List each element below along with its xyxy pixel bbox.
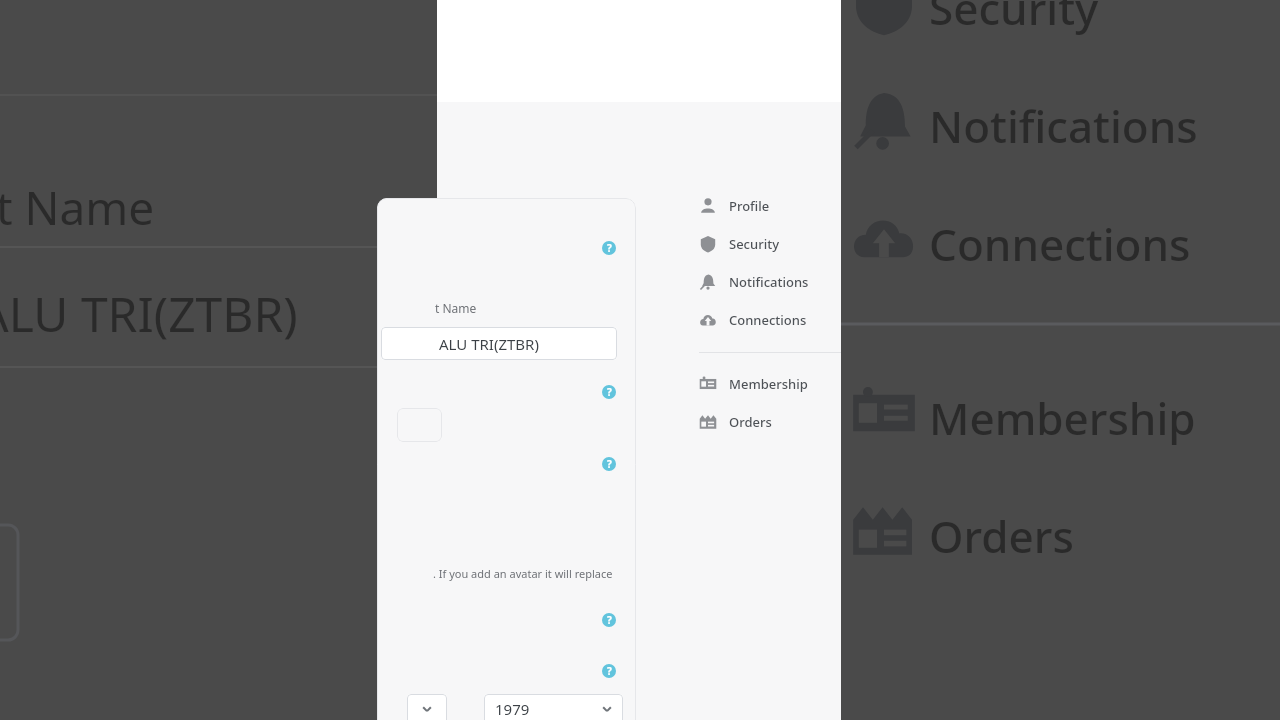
staticText: Orders: [929, 506, 1074, 566]
button[interactable]: Security: [699, 234, 841, 253]
staticText: t Name: [435, 300, 477, 316]
staticText: Security: [729, 235, 779, 253]
button[interactable]: Orders: [699, 412, 841, 431]
button[interactable]: Help: [602, 613, 616, 627]
button[interactable]: Help: [602, 385, 616, 399]
button[interactable]: Profile: [699, 196, 841, 215]
button[interactable]: Help: [602, 241, 616, 255]
button[interactable]: Connections: [699, 310, 841, 329]
button[interactable]: Help: [602, 457, 616, 471]
staticText: Membership: [729, 375, 808, 393]
staticText: Connections: [729, 311, 807, 329]
button[interactable]: ALU TRI(ZTBR): [381, 327, 617, 360]
button[interactable]: Membership: [699, 374, 841, 393]
staticText: Membership: [929, 388, 1196, 448]
staticText: ?: [607, 457, 612, 471]
button[interactable]: 1979: [484, 694, 623, 720]
button[interactable]: Open month list: [407, 694, 447, 720]
staticText: Orders: [729, 413, 772, 431]
staticText: ?: [607, 664, 612, 678]
staticText: ALU TRI(ZTBR): [0, 281, 298, 346]
staticText: t Name: [0, 176, 155, 239]
staticText: Security: [929, 0, 1099, 38]
staticText: 1979: [495, 699, 530, 719]
staticText: ALU TRI(ZTBR): [439, 334, 539, 354]
staticText: ?: [607, 385, 612, 399]
staticText: Profile: [729, 197, 770, 215]
staticText: Notifications: [929, 96, 1198, 156]
staticText: Connections: [929, 214, 1191, 274]
button[interactable]: Help: [602, 664, 616, 678]
staticText: . If you add an avatar it will replace: [433, 566, 613, 581]
button[interactable]: Notifications: [699, 272, 841, 291]
other: Open month list: [421, 703, 433, 715]
staticText: ?: [607, 613, 612, 627]
staticText: ?: [607, 241, 612, 255]
staticText: Notifications: [729, 273, 809, 291]
